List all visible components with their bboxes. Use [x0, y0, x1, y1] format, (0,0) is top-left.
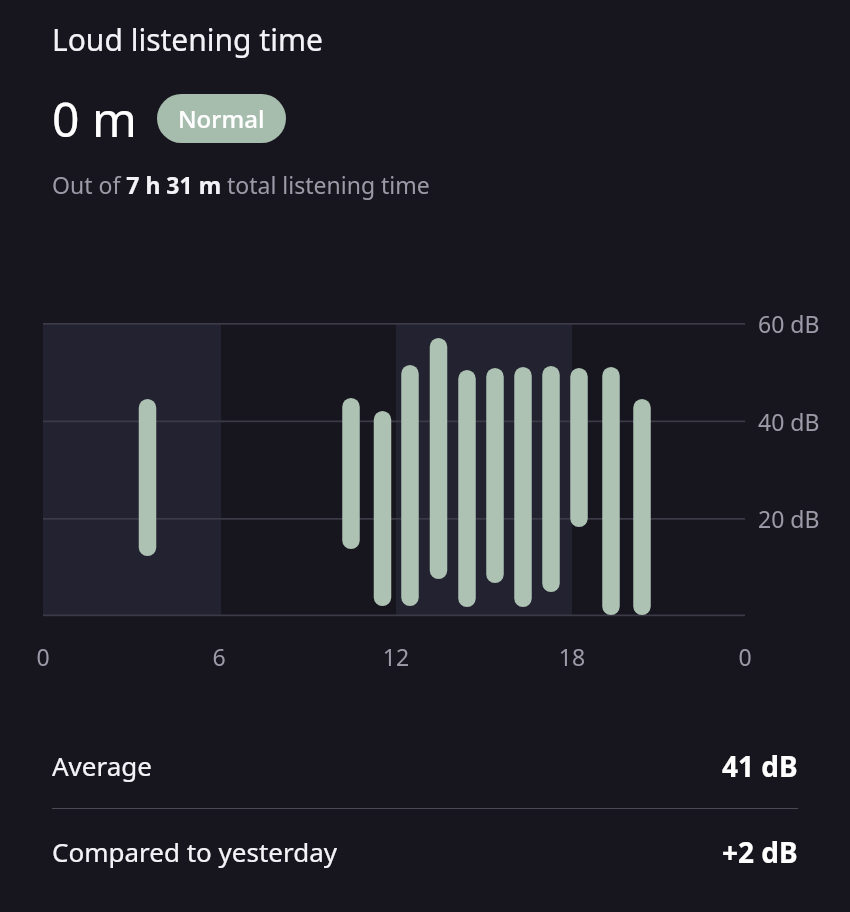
staticText: 40 dB — [758, 406, 820, 437]
staticText: 0 — [729, 641, 761, 672]
staticText: 12 — [380, 641, 412, 672]
staticText: 60 dB — [758, 308, 820, 339]
staticText: 18 — [556, 641, 588, 672]
staticText: 0 — [27, 641, 59, 672]
staticText: +2 dB — [722, 833, 798, 871]
staticText: 0 m — [52, 86, 137, 151]
staticText: 41 dB — [722, 747, 798, 785]
staticText: Normal — [178, 102, 265, 135]
button[interactable]: Average — [0, 723, 850, 808]
staticText: 20 dB — [758, 503, 820, 534]
button[interactable]: Compared to yesterday — [0, 809, 850, 894]
staticText: Average — [52, 748, 152, 783]
staticText: Out of 7 h 31 m total listening time — [52, 169, 430, 200]
staticText: 6 — [203, 641, 235, 672]
button[interactable]: Normal — [157, 94, 286, 143]
staticText: Loud listening time — [52, 19, 323, 60]
staticText: Compared to yesterday — [52, 834, 338, 869]
